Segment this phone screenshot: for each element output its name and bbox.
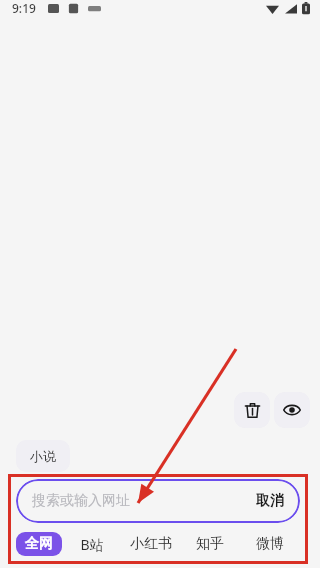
staticText: 小说 (30, 448, 56, 464)
staticText: 9:19 (12, 0, 36, 16)
button[interactable]: Preview (274, 392, 310, 428)
button[interactable]: 小红书 (121, 531, 180, 557)
staticText: 小红书 (130, 535, 172, 553)
staticText: B站 (80, 535, 104, 554)
button[interactable]: Delete (234, 392, 270, 428)
button[interactable]: 小说 (16, 440, 70, 472)
button[interactable]: 知乎 (180, 531, 240, 557)
button[interactable]: 全网 (16, 532, 62, 556)
staticText: 取消 (256, 492, 284, 510)
staticText: 知乎 (196, 535, 224, 553)
staticText: 微博 (256, 535, 284, 553)
button[interactable]: B站 (62, 531, 121, 558)
staticText: 搜索或输入网址 (32, 492, 130, 510)
button[interactable]: 搜索或输入网址 (16, 479, 300, 523)
staticText: 全网 (25, 535, 53, 553)
button[interactable]: 微博 (240, 531, 300, 557)
